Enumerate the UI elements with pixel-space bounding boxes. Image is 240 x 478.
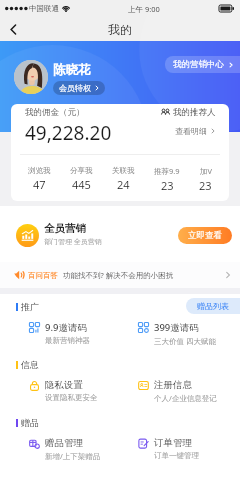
button[interactable]: 浏览我 — [26, 166, 53, 192]
button[interactable]: 9.9邀请码 — [0, 317, 138, 352]
button[interactable]: Profile photo — [14, 60, 48, 94]
staticText: 推荐9.9 — [154, 166, 180, 176]
button[interactable]: 加V — [197, 166, 214, 193]
staticText: 我的佣金（元） — [25, 107, 85, 118]
button[interactable]: 立即查看 — [178, 227, 232, 244]
staticText: 全员营销 — [44, 222, 86, 235]
button[interactable]: 全员营销 — [0, 208, 240, 262]
staticText: 最新营销神器 — [45, 336, 90, 345]
staticText: 查看明细 — [175, 126, 207, 136]
staticText: 399邀请码 — [154, 321, 199, 334]
staticText: 加V — [200, 166, 212, 176]
staticText: 个人/企业信息登记 — [154, 393, 217, 403]
staticText: 49,228.20 — [25, 120, 112, 146]
staticText: 隐私设置 — [45, 379, 83, 391]
staticText: 我的 — [108, 22, 132, 37]
staticText: 百问百答 — [28, 271, 58, 280]
button[interactable]: 关联我 — [110, 166, 137, 192]
staticText: 订单一键管理 — [154, 451, 199, 460]
staticText: 推广 — [21, 301, 39, 312]
staticText: 23 — [199, 178, 212, 193]
staticText: 功能找不到? 解决不会用的小困扰 — [63, 270, 174, 280]
staticText: 三大价值 四大赋能 — [154, 336, 216, 346]
button[interactable]: 我的营销中心 — [165, 56, 240, 73]
staticText: 设置隐私更安全 — [45, 393, 98, 402]
staticText: 会员特权 — [59, 83, 91, 93]
button[interactable]: 399邀请码 — [138, 317, 240, 352]
staticText: 我的营销中心 — [173, 59, 224, 70]
button[interactable]: 分享我 — [68, 166, 95, 192]
button[interactable]: 赠品列表 — [186, 298, 240, 314]
staticText: 新增/上下架赠品 — [45, 451, 101, 461]
staticText: 赠品列表 — [197, 301, 229, 311]
staticText: 分享我 — [70, 166, 93, 175]
staticText: 立即查看 — [188, 230, 222, 241]
staticText: 陈晓花 — [53, 62, 91, 78]
staticText: 我的推荐人 — [173, 107, 216, 118]
staticText: 23 — [161, 178, 174, 193]
button[interactable]: 隐私设置 — [0, 375, 138, 410]
staticText: 注册信息 — [154, 379, 192, 391]
staticText: 赠品 — [21, 417, 39, 428]
button[interactable]: 查看明细 — [175, 126, 216, 136]
staticText: 浏览我 — [28, 166, 51, 175]
staticText: 部门管理 全员营销 — [44, 237, 102, 247]
button[interactable]: 订单管理 — [138, 433, 240, 468]
staticText: 24 — [117, 177, 130, 192]
staticText: 9.9邀请码 — [45, 321, 87, 334]
staticText: 上午 9:00 — [128, 4, 160, 14]
button[interactable]: 赠品管理 — [0, 433, 138, 468]
staticText: 445 — [72, 177, 91, 192]
button[interactable]: 我的推荐人 — [161, 107, 216, 118]
button[interactable]: 会员特权 — [53, 81, 105, 95]
button[interactable]: 百问百答 — [0, 262, 240, 288]
button[interactable]: Back — [0, 17, 26, 41]
staticText: 中国联通 — [29, 4, 59, 13]
staticText: 关联我 — [112, 166, 135, 175]
staticText: 信息 — [21, 359, 39, 370]
button[interactable]: 推荐9.9 — [152, 166, 182, 193]
staticText: 订单管理 — [154, 437, 192, 449]
staticText: 赠品管理 — [45, 437, 83, 449]
button[interactable]: 注册信息 — [138, 375, 240, 410]
staticText: 47 — [33, 177, 46, 192]
